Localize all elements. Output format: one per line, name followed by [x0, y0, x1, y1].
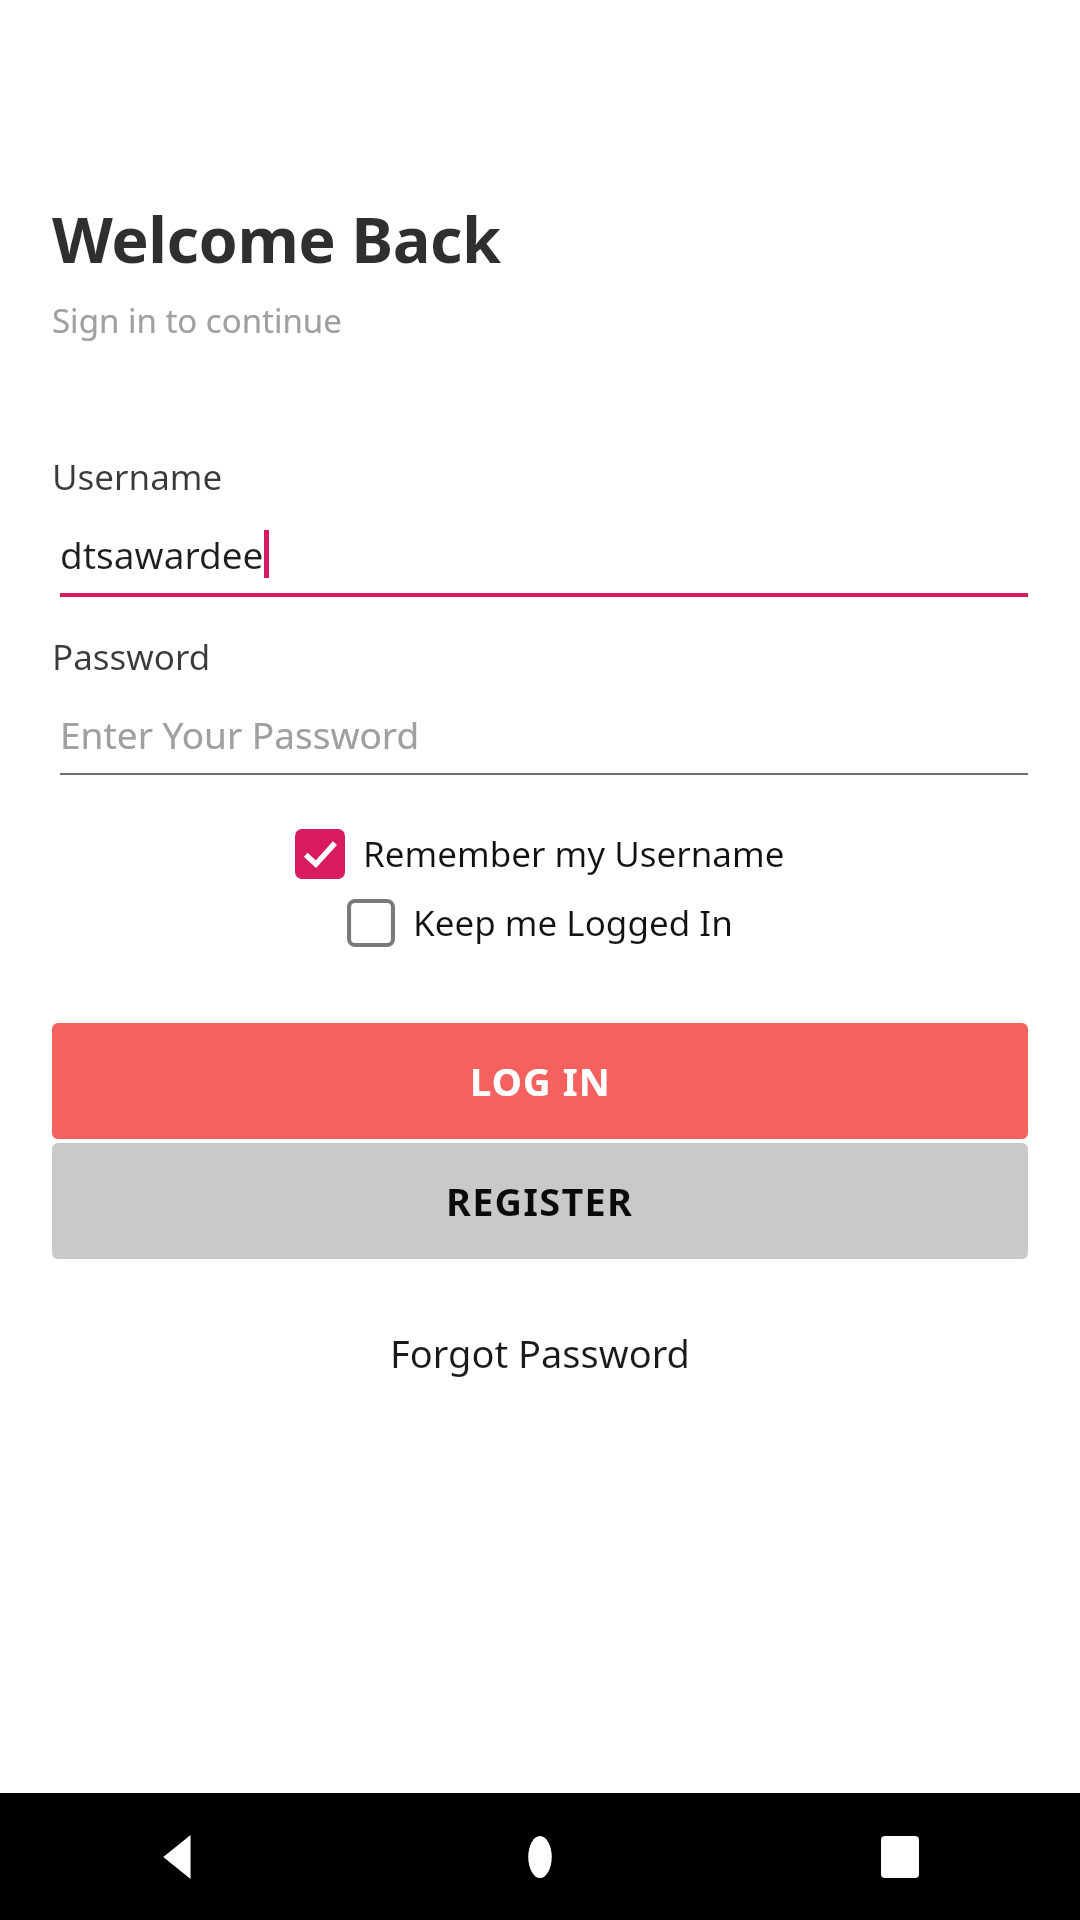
staticText: Keep me Logged In — [413, 899, 733, 947]
button[interactable]: dtsawardee — [60, 529, 1028, 597]
staticText: Sign in to continue — [52, 298, 342, 343]
button[interactable]: Forgot Password — [374, 1319, 706, 1387]
staticText: Remember my Username — [363, 830, 785, 878]
button[interactable]: Recent apps — [720, 1793, 1080, 1920]
button[interactable]: REGISTER — [52, 1143, 1028, 1259]
button[interactable]: LOG IN — [52, 1023, 1028, 1139]
staticText: Forgot Password — [390, 1327, 690, 1379]
staticText: Password — [52, 633, 211, 681]
staticText: dtsawardee — [60, 529, 264, 579]
button[interactable]: Keep me Logged In — [347, 899, 733, 947]
button[interactable]: Back — [0, 1793, 360, 1920]
button[interactable]: Home — [360, 1793, 720, 1920]
staticText: REGISTER — [446, 1175, 634, 1227]
button[interactable]: Remember my Username — [295, 829, 785, 879]
staticText: Welcome Back — [52, 196, 501, 282]
staticText: Username — [52, 453, 223, 501]
staticText: Enter Your Password — [60, 709, 420, 759]
staticText: LOG IN — [470, 1055, 611, 1107]
button[interactable]: Enter Your Password — [60, 709, 1028, 775]
